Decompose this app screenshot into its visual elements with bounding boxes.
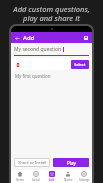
button[interactable]: Social (28, 170, 44, 183)
button[interactable]: Notice (60, 170, 76, 183)
staticText: Social (32, 178, 40, 182)
staticText: Play (67, 160, 76, 166)
staticText: My first question (15, 73, 51, 79)
staticText: Add (23, 34, 35, 42)
button[interactable]: Back (13, 34, 21, 42)
button[interactable]: Home (11, 170, 28, 183)
staticText: Add (49, 178, 55, 182)
staticText: Share or Install (18, 160, 47, 165)
staticText: Add custom questions, play and share it (0, 4, 103, 24)
button[interactable]: Share or Install (14, 158, 50, 167)
staticText: Settings (79, 178, 90, 182)
staticText: Select (74, 62, 86, 67)
staticText: My second question (14, 46, 62, 53)
staticText: Notice (64, 178, 73, 182)
button[interactable]: Image (14, 61, 21, 68)
staticText: Home (16, 178, 24, 182)
button[interactable]: Play (53, 158, 89, 167)
button[interactable]: Add (44, 170, 60, 183)
button[interactable]: My second question (14, 46, 89, 56)
button[interactable]: Save (82, 34, 89, 41)
button[interactable]: Settings (76, 170, 92, 183)
button[interactable]: Select (71, 60, 89, 69)
